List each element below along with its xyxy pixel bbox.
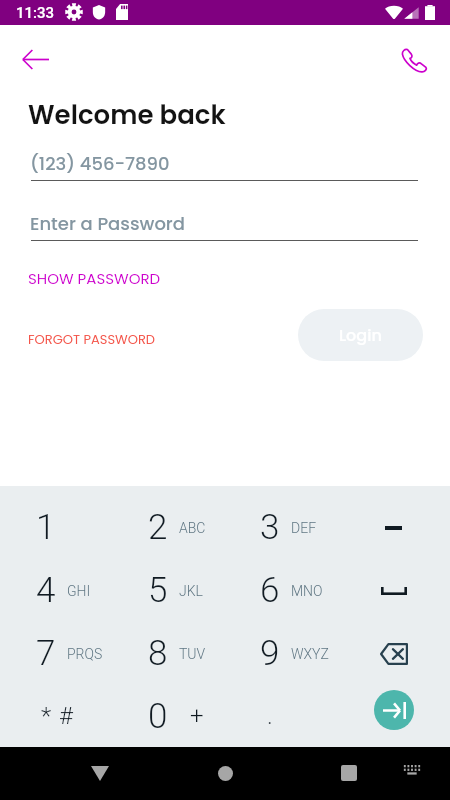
button[interactable]: Recents: [327, 751, 371, 795]
button[interactable]: Next: [337, 685, 450, 747]
button[interactable]: 7: [0, 622, 112, 685]
staticText: 6: [260, 570, 280, 611]
staticText: *: [41, 702, 52, 730]
button[interactable]: Back: [13, 37, 57, 81]
button[interactable]: 3: [224, 496, 337, 559]
staticText: MNO: [291, 583, 323, 599]
staticText: ABC: [179, 520, 206, 536]
button[interactable]: Home: [203, 751, 247, 795]
staticText: PRQS: [67, 646, 103, 662]
staticText: SHOW PASSWORD: [28, 268, 161, 289]
other: Next: [374, 690, 414, 730]
staticText: 2: [148, 507, 168, 548]
staticText: 1: [36, 507, 56, 548]
button[interactable]: 5: [112, 559, 224, 622]
button[interactable]: *: [0, 685, 112, 747]
staticText: WXYZ: [291, 646, 329, 662]
staticText: 11:33: [16, 4, 55, 22]
staticText: 0: [148, 696, 168, 737]
staticText: #: [59, 702, 73, 730]
staticText: 5: [148, 570, 168, 611]
button[interactable]: 0: [112, 685, 224, 747]
button[interactable]: 4: [0, 559, 112, 622]
staticText: Enter a Password: [30, 211, 185, 236]
button[interactable]: Switch keyboard: [392, 751, 431, 790]
button[interactable]: SHOW PASSWORD: [28, 268, 161, 289]
button[interactable]: Login: [298, 309, 423, 361]
button[interactable]: Dash: [337, 496, 450, 559]
staticText: GHI: [67, 583, 91, 599]
button[interactable]: 8: [112, 622, 224, 685]
staticText: (123) 456-7890: [30, 151, 170, 176]
staticText: Welcome back: [28, 97, 226, 133]
staticText: TUV: [179, 646, 206, 662]
staticText: 4: [36, 570, 56, 611]
staticText: +: [190, 702, 204, 730]
staticText: 7: [36, 633, 56, 674]
button[interactable]: 2: [112, 496, 224, 559]
staticText: .: [267, 702, 273, 730]
button[interactable]: Back: [78, 751, 122, 795]
other: Space: [381, 587, 407, 595]
staticText: Login: [339, 324, 382, 346]
button[interactable]: 1: [0, 496, 112, 559]
staticText: DEF: [291, 520, 317, 536]
staticText: 8: [148, 633, 168, 674]
staticText: FORGOT PASSWORD: [28, 330, 156, 348]
button[interactable]: Backspace: [337, 622, 450, 685]
button[interactable]: 9: [224, 622, 337, 685]
staticText: JKL: [179, 583, 203, 599]
button[interactable]: Space: [337, 559, 450, 622]
button[interactable]: 6: [224, 559, 337, 622]
staticText: 3: [260, 507, 280, 548]
button[interactable]: FORGOT PASSWORD: [28, 330, 156, 348]
button[interactable]: Call: [393, 37, 437, 81]
staticText: 9: [260, 633, 280, 674]
other: Backspace: [380, 643, 408, 665]
